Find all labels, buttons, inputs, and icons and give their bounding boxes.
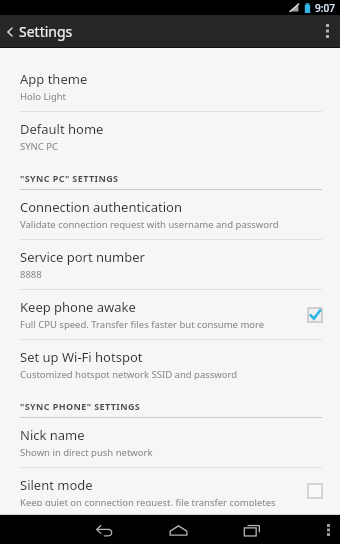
staticText: Customized hotspot network SSID and pass…	[20, 368, 238, 381]
staticText: Full CPU speed. Transfer files faster bu…	[20, 318, 296, 331]
staticText: Set up Wi-Fi hotspot	[20, 348, 143, 366]
staticText: 8888	[20, 268, 42, 281]
staticText: Default home	[20, 120, 104, 138]
staticText: Service port number	[20, 248, 145, 266]
button[interactable]: Service port number	[0, 240, 340, 289]
button[interactable]: Default home	[0, 112, 340, 161]
button[interactable]: Back to Settings	[0, 18, 79, 45]
button[interactable]: More options	[315, 18, 340, 44]
button[interactable]: App theme	[0, 62, 340, 111]
button[interactable]: Keep phone awake	[0, 290, 340, 339]
button[interactable]: Unchecked	[304, 480, 326, 502]
staticText: Shown in direct push network	[20, 446, 153, 459]
button[interactable]: Recent apps	[236, 518, 268, 542]
button[interactable]: Checked	[304, 304, 326, 326]
staticText: Connection authentication	[20, 198, 182, 216]
button[interactable]: Back	[88, 518, 120, 542]
button[interactable]: Set up Wi-Fi hotspot	[0, 340, 340, 389]
staticText: SYNC PC	[20, 140, 59, 153]
button[interactable]: Silent mode	[0, 468, 340, 514]
staticText: "SYNC PC" SETTINGS	[20, 172, 119, 184]
staticText: App theme	[20, 70, 88, 88]
staticText: "SYNC PHONE" SETTINGS	[20, 400, 141, 412]
staticText: Keep quiet on connection request, file t…	[20, 496, 276, 506]
staticText: 9:07	[315, 1, 335, 15]
staticText: Nick name	[20, 426, 85, 444]
button[interactable]: Home	[162, 518, 194, 542]
staticText: Holo Light	[20, 90, 67, 103]
staticText: Keep phone awake	[20, 298, 136, 316]
button[interactable]: Menu	[317, 518, 340, 542]
staticText: Settings	[19, 22, 73, 41]
button[interactable]: Connection authentication	[0, 190, 340, 239]
staticText: Silent mode	[20, 476, 93, 494]
staticText: Validate connection request with usernam…	[20, 218, 279, 231]
button[interactable]: Nick name	[0, 418, 340, 467]
